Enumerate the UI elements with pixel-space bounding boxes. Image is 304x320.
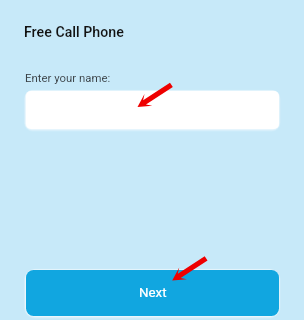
- button[interactable]: Enter your name: [26, 91, 279, 129]
- button[interactable]: Next: [26, 270, 279, 316]
- staticText: Next: [139, 285, 167, 301]
- staticText: Enter your name:: [25, 71, 111, 84]
- staticText: Free Call Phone: [24, 24, 124, 41]
